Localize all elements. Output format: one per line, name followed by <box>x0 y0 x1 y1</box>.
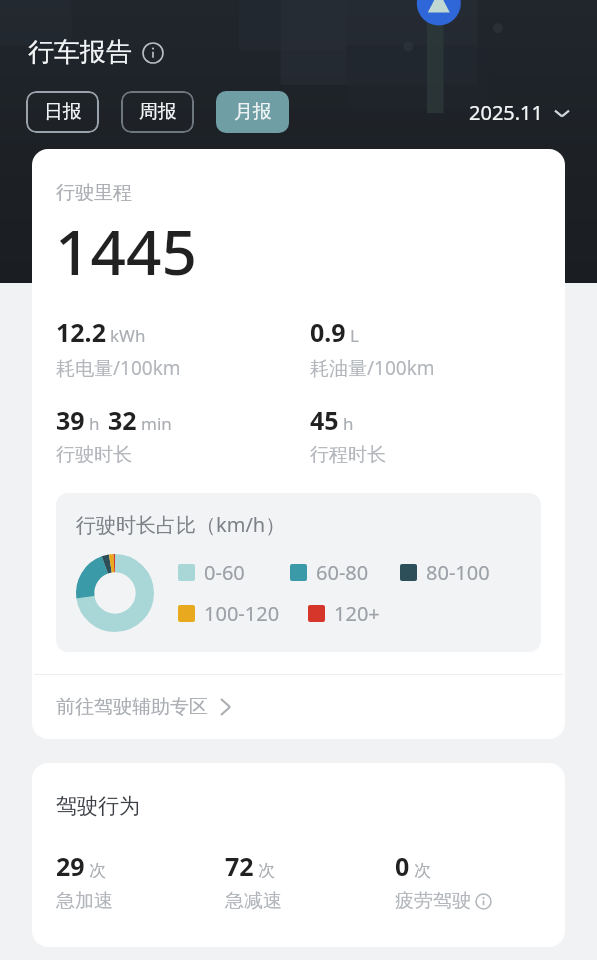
staticText: 32 <box>108 403 137 437</box>
staticText: 行程时长 <box>310 443 386 467</box>
staticText: 120+ <box>334 600 380 627</box>
staticText: 次 <box>89 860 106 881</box>
staticText: 周报 <box>139 100 177 124</box>
staticText: kWh <box>110 324 146 347</box>
staticText: 39 <box>56 403 85 437</box>
staticText: 0.9 <box>310 315 346 349</box>
staticText: 疲劳驾驶 <box>395 889 471 913</box>
staticText: 次 <box>414 860 431 881</box>
button[interactable]: 2025.11 <box>465 95 575 130</box>
staticText: 80-100 <box>426 559 490 586</box>
staticText: h <box>89 412 100 435</box>
staticText: 12.2 <box>56 315 106 349</box>
staticText: 急加速 <box>56 889 113 913</box>
staticText: 耗油量/100km <box>310 355 435 381</box>
staticText: 日报 <box>44 100 82 124</box>
staticText: 耗电量/100km <box>56 355 181 381</box>
staticText: 次 <box>258 860 275 881</box>
button[interactable]: 周报 <box>121 91 194 133</box>
staticText: h <box>343 412 354 435</box>
button[interactable]: 说明 <box>142 42 164 64</box>
staticText: 0 <box>395 849 410 883</box>
staticText: 72 <box>225 849 254 883</box>
staticText: 45 <box>310 403 339 437</box>
staticText: 行驶里程 <box>56 181 132 205</box>
staticText: 前往驾驶辅助专区 <box>56 695 208 719</box>
staticText: 月报 <box>234 100 272 124</box>
button[interactable]: 疲劳驾驶说明 <box>474 892 492 910</box>
button[interactable]: 月报 <box>216 91 289 133</box>
button[interactable]: 前往驾驶辅助专区 <box>32 675 565 739</box>
staticText: 急减速 <box>225 889 282 913</box>
staticText: 驾驶行为 <box>56 793 140 819</box>
staticText: 1445 <box>55 209 197 293</box>
staticText: 行车报告 <box>28 36 132 69</box>
staticText: 29 <box>56 849 85 883</box>
staticText: 行驶时长占比（km/h） <box>76 511 286 538</box>
staticText: 60-80 <box>316 559 369 586</box>
staticText: 行驶时长 <box>56 443 132 467</box>
button[interactable]: 日报 <box>26 91 99 133</box>
staticText: L <box>350 324 359 347</box>
staticText: min <box>141 412 172 435</box>
staticText: 2025.11 <box>469 99 543 126</box>
staticText: 100-120 <box>204 600 280 627</box>
staticText: 0-60 <box>204 559 245 586</box>
